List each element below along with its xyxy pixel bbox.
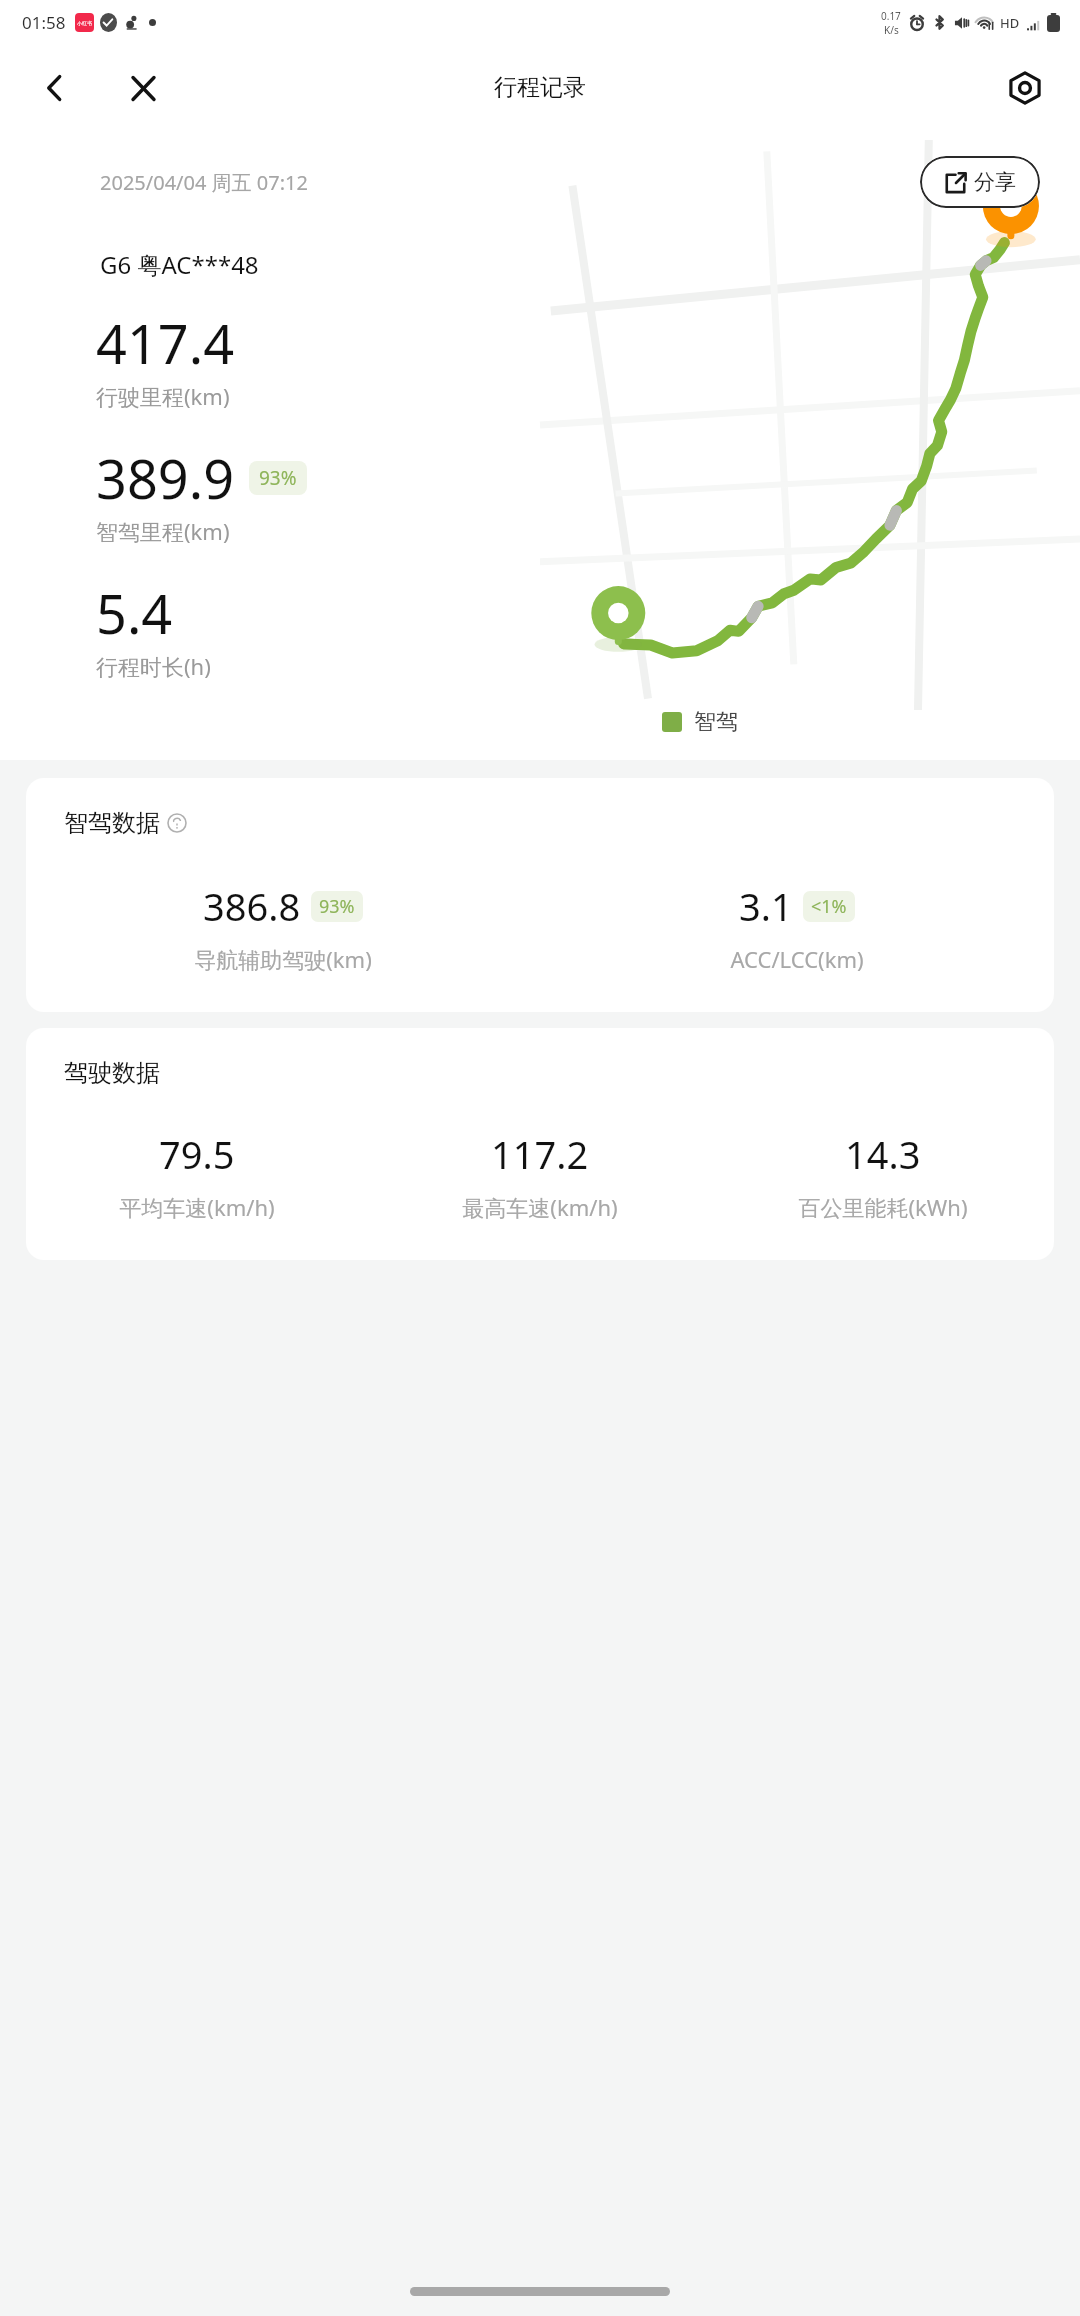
staticText: <1%	[811, 894, 847, 919]
staticText: 14.3	[845, 1128, 921, 1180]
staticText: 智驾	[694, 708, 738, 736]
staticText: 智驾里程(km)	[96, 516, 230, 546]
staticText: 平均车速(km/h)	[119, 1192, 275, 1222]
staticText: 驾驶数据	[64, 1058, 160, 1088]
staticText: 79.5	[159, 1128, 235, 1180]
staticText: 417.4	[96, 306, 235, 380]
staticText: 行程记录	[494, 73, 586, 102]
staticText: 最高车速(km/h)	[462, 1192, 618, 1222]
staticText: 百公里能耗(kWh)	[798, 1192, 968, 1222]
staticText: 分享	[974, 169, 1016, 195]
staticText: ACC/LCC(km)	[730, 944, 864, 974]
button[interactable]: 驾驶数据	[26, 1028, 1054, 1260]
staticText: 117.2	[491, 1128, 589, 1180]
staticText: 389.9	[96, 441, 235, 515]
button[interactable]: 分享	[920, 156, 1040, 208]
staticText: 93%	[319, 894, 355, 919]
staticText: 智驾数据	[64, 808, 160, 838]
button[interactable]: Back	[30, 63, 80, 113]
staticText: HD	[1000, 14, 1020, 32]
staticText: 386.8	[203, 880, 301, 932]
staticText: 导航辅助驾驶(km)	[194, 944, 372, 974]
button[interactable]: Close	[118, 63, 168, 113]
staticText: G6 粤AC***48	[100, 248, 259, 281]
staticText: 0.17	[881, 9, 901, 23]
staticText: 2025/04/04 周五 07:12	[100, 169, 308, 196]
staticText: 93%	[259, 465, 297, 491]
staticText: 小红书	[77, 20, 92, 26]
staticText: 3.1	[739, 880, 793, 932]
button[interactable]: 智驾数据	[26, 778, 1054, 1012]
staticText: 行程时长(h)	[96, 651, 211, 681]
button[interactable]: Settings	[1000, 63, 1050, 113]
staticText: 01:58	[22, 11, 66, 34]
staticText: 行驶里程(km)	[96, 381, 230, 411]
staticText: 5.4	[96, 576, 173, 650]
staticText: K/s	[884, 23, 899, 37]
